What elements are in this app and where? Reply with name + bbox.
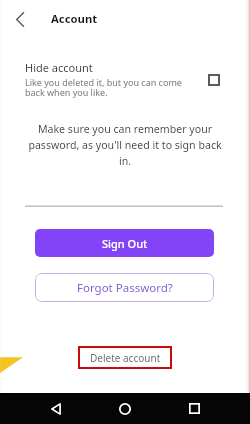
- staticText: Hide account: [25, 60, 93, 75]
- staticText: Sign Out: [102, 236, 148, 251]
- button[interactable]: Back: [4, 5, 35, 33]
- button[interactable]: Back: [41, 393, 71, 424]
- button[interactable]: Recent apps: [179, 393, 209, 424]
- staticText: Delete account: [90, 351, 161, 365]
- button[interactable]: Forgot Password?: [35, 273, 214, 302]
- button[interactable]: Home: [110, 393, 140, 424]
- staticText: Forgot Password?: [77, 280, 173, 296]
- staticText: Like you deleted it, but you can come ba…: [25, 76, 197, 99]
- button[interactable]: Delete account: [78, 346, 172, 369]
- button[interactable]: Hide account checkbox: [208, 74, 220, 86]
- staticText: Account: [51, 11, 98, 26]
- button[interactable]: Sign Out: [35, 229, 214, 257]
- staticText: Make sure you can remember your password…: [27, 122, 223, 168]
